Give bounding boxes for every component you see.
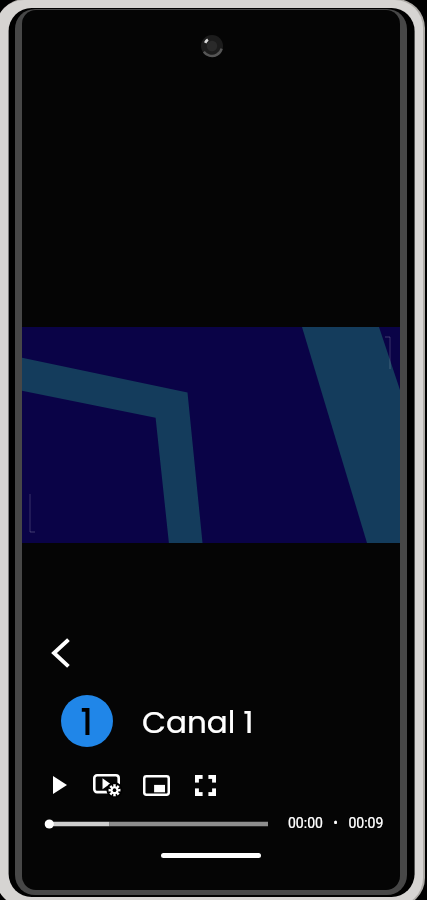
staticText: Canal 1 bbox=[142, 700, 254, 743]
button[interactable]: 1 bbox=[61, 693, 254, 749]
staticText: 1 bbox=[80, 695, 94, 747]
button[interactable]: Seek bar bbox=[36, 812, 276, 836]
button[interactable]: Video settings bbox=[84, 768, 128, 804]
button[interactable]: Fullscreen bbox=[183, 767, 227, 803]
button[interactable]: Play bbox=[38, 767, 82, 803]
staticText: 00:00 • 00:09 bbox=[288, 815, 384, 831]
button[interactable]: Back bbox=[38, 631, 82, 675]
button[interactable]: Picture in picture bbox=[134, 767, 178, 803]
